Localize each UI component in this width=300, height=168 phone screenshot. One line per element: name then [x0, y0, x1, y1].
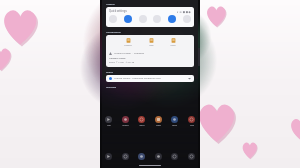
button[interactable]: Play — [105, 116, 112, 127]
button[interactable]: Camera — [106, 35, 194, 67]
staticText: Quick settings — [109, 9, 127, 13]
staticText: Network traffic — [109, 57, 126, 60]
button[interactable]: Files — [148, 38, 155, 47]
staticText: Camera — [124, 44, 132, 47]
button[interactable]: Quick setting toggle — [183, 15, 191, 23]
staticText: Utilities — [106, 2, 115, 5]
button[interactable]: Android System · Alternative notificatio… — [106, 75, 194, 82]
staticText: Music — [139, 124, 145, 127]
staticText: ▾ ☲ ■ ■ ● — [177, 10, 191, 13]
button[interactable]: App — [188, 153, 195, 160]
button[interactable]: Quick setting toggle — [168, 15, 176, 23]
staticText: Notifications — [106, 30, 121, 33]
button[interactable]: App — [138, 153, 145, 160]
staticText: Clock — [170, 44, 176, 47]
button[interactable]: Camera — [123, 38, 133, 47]
button[interactable]: Music — [138, 116, 145, 127]
staticText: Files — [149, 44, 154, 47]
button[interactable]: Quick setting toggle — [124, 15, 132, 23]
button[interactable]: App — [105, 153, 112, 160]
staticText: Select — [106, 70, 113, 73]
staticText: Play — [107, 124, 111, 127]
staticText: wlan0 ↑ 12 kB ↓ 341 kB — [109, 61, 135, 64]
button[interactable]: Quick setting toggle — [139, 15, 147, 23]
staticText: Photos — [122, 124, 129, 127]
button[interactable]: Mail — [188, 116, 195, 127]
button[interactable]: Photos — [122, 116, 129, 127]
button[interactable]: Clock — [169, 38, 177, 47]
staticText: Drive — [172, 124, 177, 127]
button[interactable]: Drive — [171, 116, 178, 127]
button[interactable]: Quick setting toggle — [109, 15, 117, 23]
staticText: Android System · Alternative notificatio… — [114, 77, 161, 80]
staticText: Mail — [190, 124, 194, 127]
button[interactable]: Quick settings — [106, 7, 194, 27]
staticText: Android System · Charging — [114, 52, 144, 55]
staticText: Message — [106, 85, 117, 88]
staticText: Maps — [156, 124, 161, 127]
button[interactable]: Maps — [155, 116, 162, 127]
button[interactable]: App — [171, 153, 178, 160]
button[interactable]: App — [155, 153, 162, 160]
button[interactable]: Quick setting toggle — [153, 15, 161, 23]
button[interactable]: App — [122, 153, 129, 160]
